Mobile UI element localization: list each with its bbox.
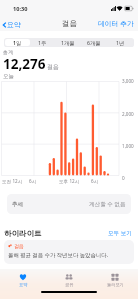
staticText: 공유 xyxy=(65,282,74,287)
button[interactable]: 1개월 xyxy=(55,39,81,46)
button[interactable]: 1일 xyxy=(5,39,30,46)
button[interactable]: 1주 xyxy=(30,39,55,46)
staticText: 둘러보기 xyxy=(107,282,124,287)
staticText: 총계 xyxy=(3,49,13,55)
button[interactable]: 둘러보기 xyxy=(92,269,138,287)
staticText: 추세 xyxy=(12,201,24,208)
staticText: 6시 xyxy=(91,178,99,184)
staticText: 요약 xyxy=(19,282,28,287)
button[interactable]: 공유 xyxy=(46,269,92,287)
staticText: 1개월 xyxy=(61,39,75,46)
button[interactable]: 6개월 xyxy=(81,39,107,46)
button[interactable]: 데이터 추가 xyxy=(98,19,138,31)
staticText: 1주 xyxy=(38,39,47,46)
staticText: 6개월 xyxy=(87,39,101,46)
staticText: 오늘 xyxy=(3,73,14,80)
button[interactable]: 요약 xyxy=(0,18,24,31)
staticText: 3,000 xyxy=(122,78,134,84)
staticText: 걸음 xyxy=(47,63,59,71)
staticText: 요약 xyxy=(7,20,21,29)
button[interactable]: 걸음 xyxy=(4,240,134,264)
staticText: 올해 평균 걸음 수가 작년보다 높았습니다. xyxy=(8,251,109,258)
staticText: 오후 12시 xyxy=(59,178,80,184)
staticText: 0 xyxy=(122,175,125,181)
staticText: 걸음 xyxy=(14,243,24,249)
staticText: 2,000 xyxy=(122,111,134,117)
staticText: 6시 xyxy=(29,178,37,184)
staticText: 1,000 xyxy=(122,143,134,149)
button[interactable]: 모두 보기 xyxy=(106,227,134,239)
staticText: 오전 12시 xyxy=(2,178,23,184)
staticText: 계산할 수 없음 xyxy=(89,200,126,208)
button[interactable]: 요약 xyxy=(0,269,46,287)
staticText: 12,276 xyxy=(3,55,46,73)
staticText: 1년 xyxy=(116,39,125,46)
staticText: 걸음 xyxy=(62,19,77,28)
staticText: 하이라이트 xyxy=(4,229,42,238)
button[interactable]: 추세 xyxy=(7,194,131,214)
staticText: 1일 xyxy=(13,39,22,46)
staticText: 10:30 xyxy=(13,5,28,13)
button[interactable]: 1년 xyxy=(107,39,133,46)
